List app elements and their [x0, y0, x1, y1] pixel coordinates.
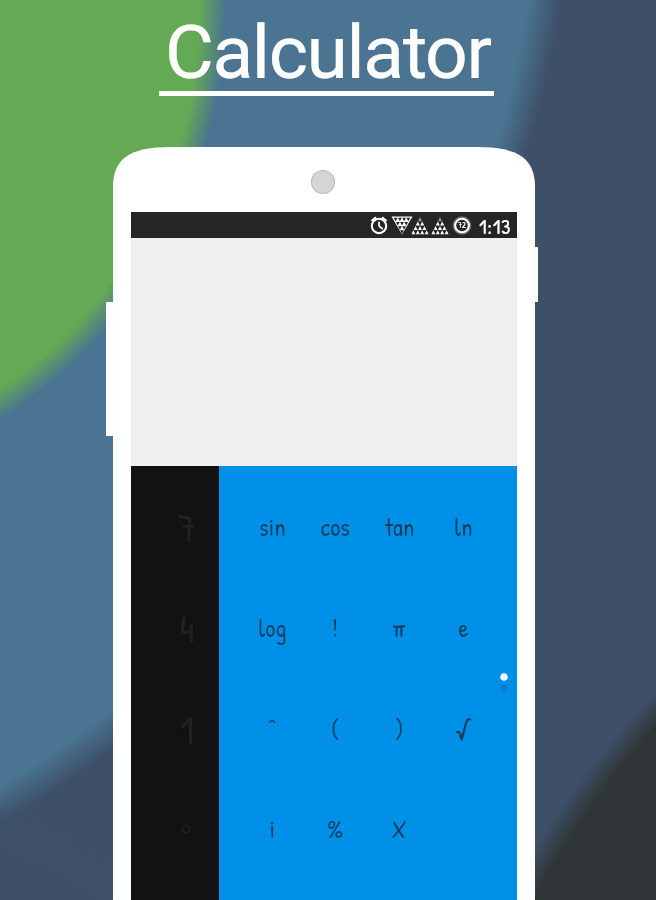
button[interactable]: pi: [362, 578, 437, 678]
button[interactable]: cosine: [298, 477, 373, 577]
button[interactable]: close bracket: [362, 679, 437, 779]
button[interactable]: percent: [298, 779, 373, 879]
button[interactable]: multiply: [362, 779, 437, 879]
button[interactable]: square root: [426, 679, 501, 779]
button[interactable]: log: [235, 578, 310, 678]
button[interactable]: natural log: [426, 477, 501, 577]
button[interactable]: open bracket: [298, 679, 373, 779]
button[interactable]: e: [426, 578, 501, 678]
button[interactable]: sine: [235, 477, 310, 577]
button[interactable]: Page indicator: [492, 664, 516, 700]
button[interactable]: imaginary unit: [235, 779, 310, 879]
button[interactable]: Status bar: [131, 212, 517, 238]
button[interactable]: factorial: [298, 578, 373, 678]
button[interactable]: power: [235, 679, 310, 779]
button[interactable]: tangent: [362, 477, 437, 577]
